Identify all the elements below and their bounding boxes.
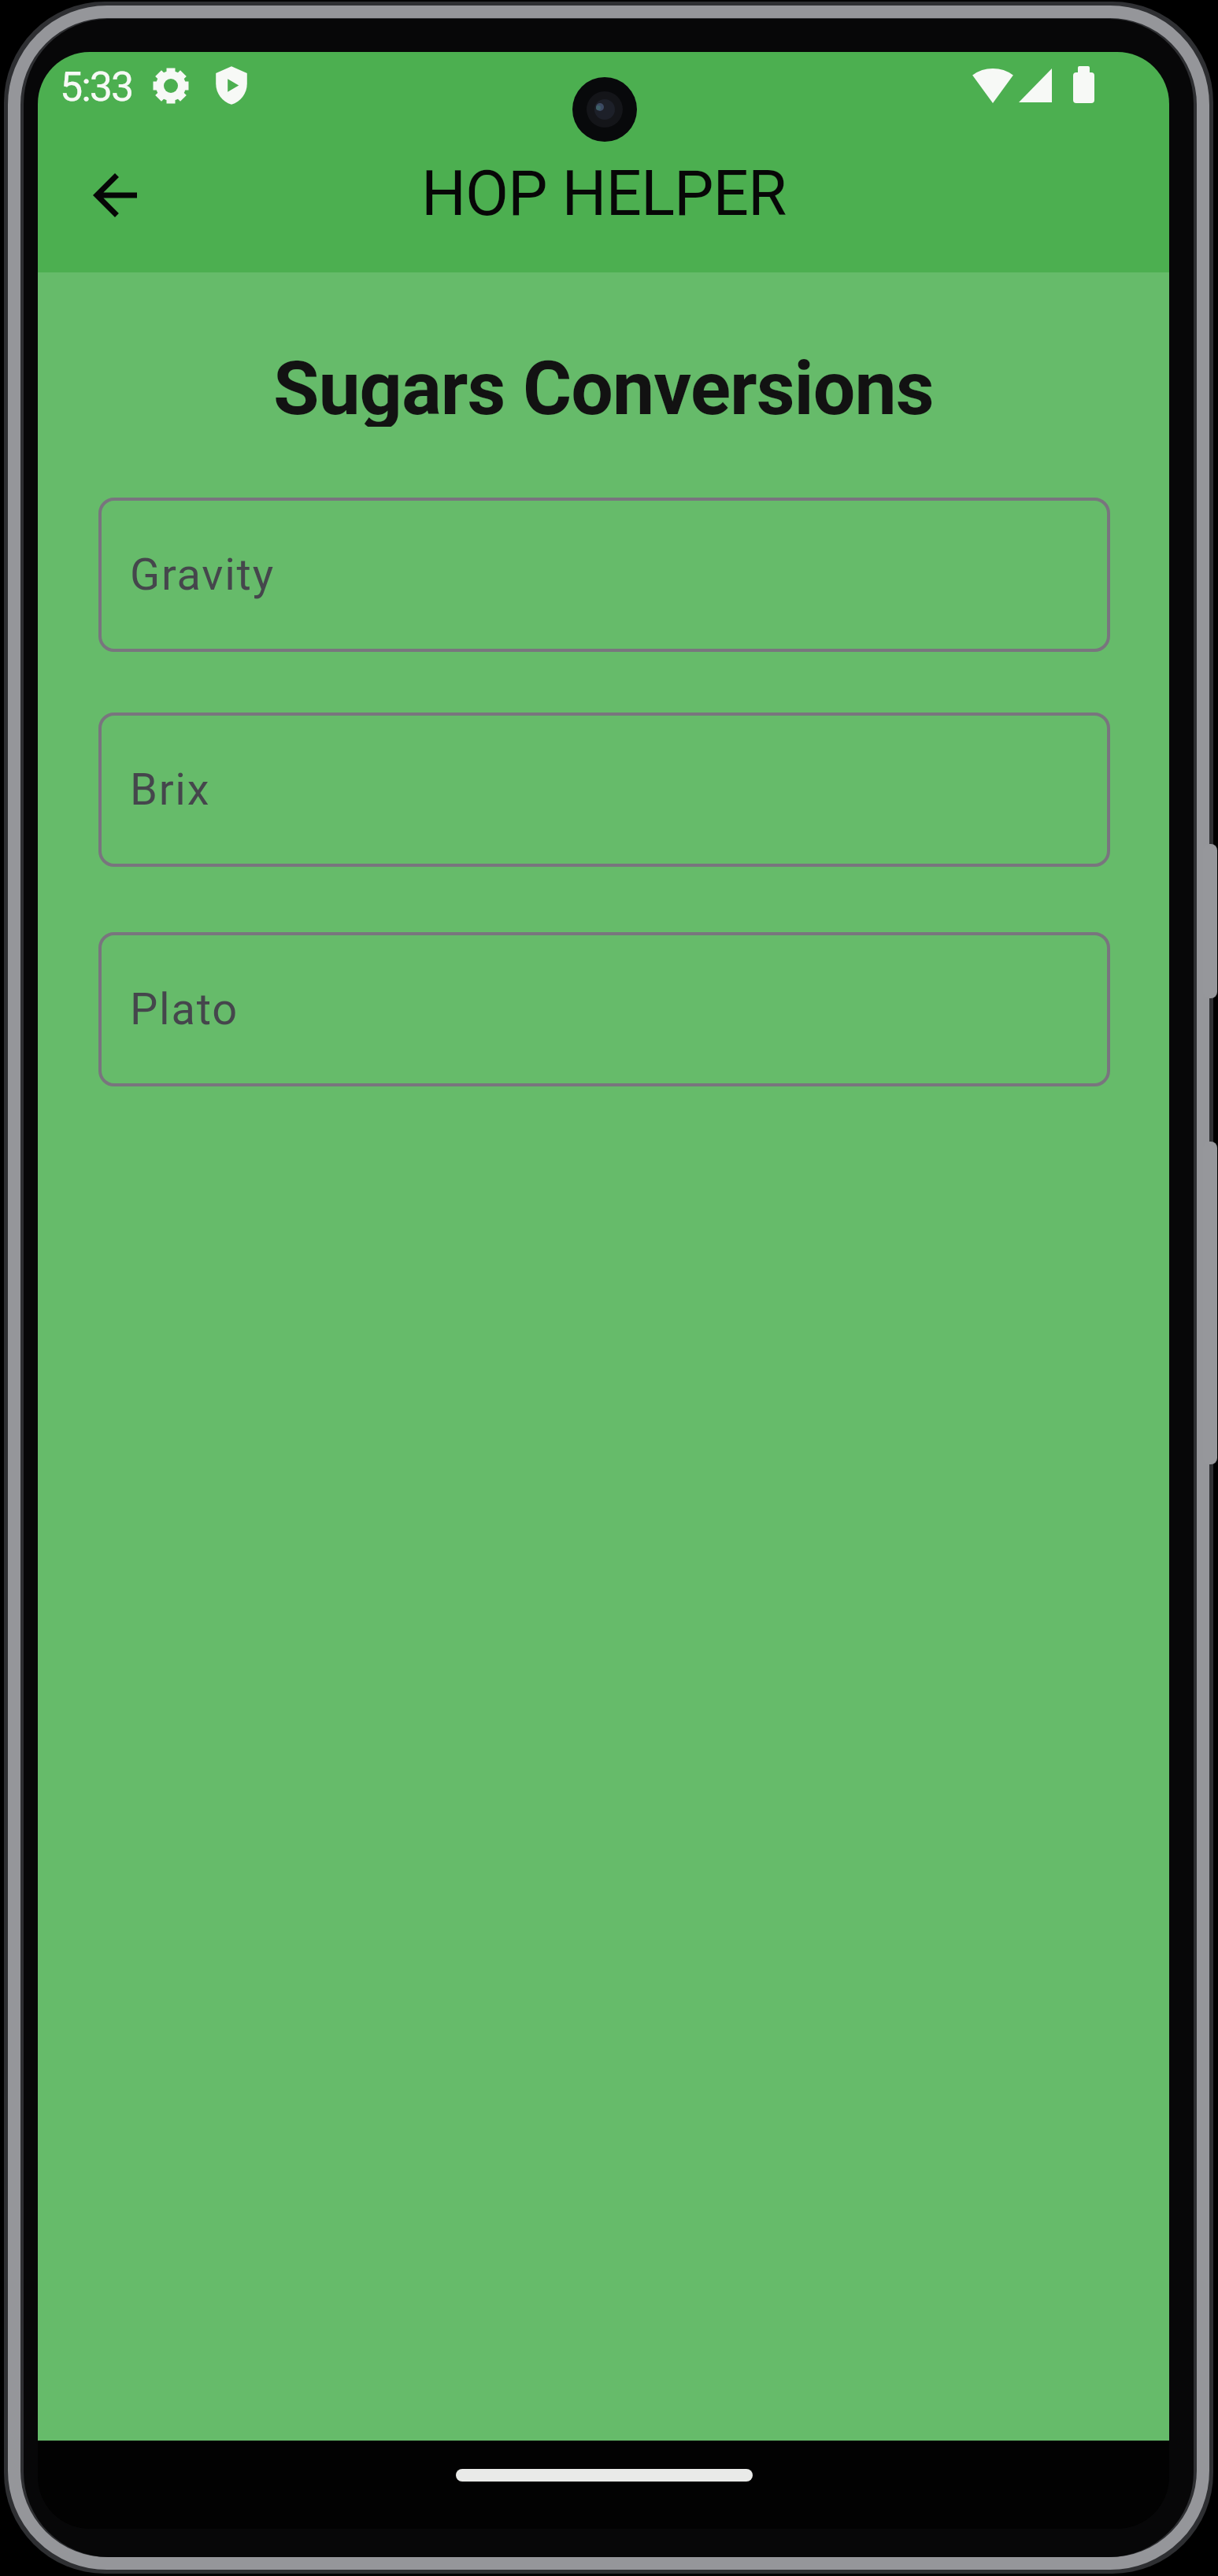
button[interactable]: Plato [98,932,1110,1086]
button[interactable]: Gravity [98,498,1110,652]
staticText: Plato [130,983,239,1035]
button[interactable]: Brix [98,712,1110,867]
staticText: Brix [130,764,211,816]
button[interactable] [82,162,148,228]
staticText: Gravity [130,549,275,601]
staticText: 5:33 [60,63,133,111]
staticText: HOP HELPER [421,157,787,228]
staticText: Sugars Conversions [273,345,934,427]
